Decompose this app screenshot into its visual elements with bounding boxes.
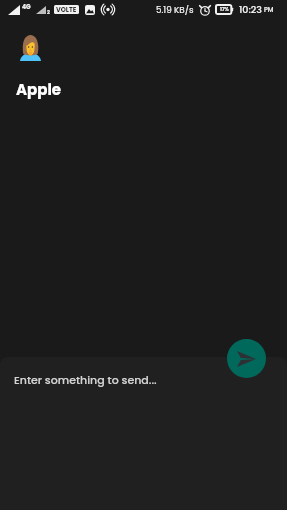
staticText: 4G: [22, 3, 31, 11]
staticText: 5.19 KB/s: [156, 4, 194, 16]
staticText: 17%: [220, 6, 229, 13]
staticText: PM: [264, 5, 274, 14]
staticText: 2: [47, 9, 50, 16]
button[interactable]: Send: [227, 339, 266, 378]
staticText: VOLTE: [56, 5, 77, 14]
staticText: 10:23: [239, 3, 262, 16]
staticText: Apple: [16, 79, 62, 100]
staticText: Enter something to send...: [14, 372, 157, 387]
